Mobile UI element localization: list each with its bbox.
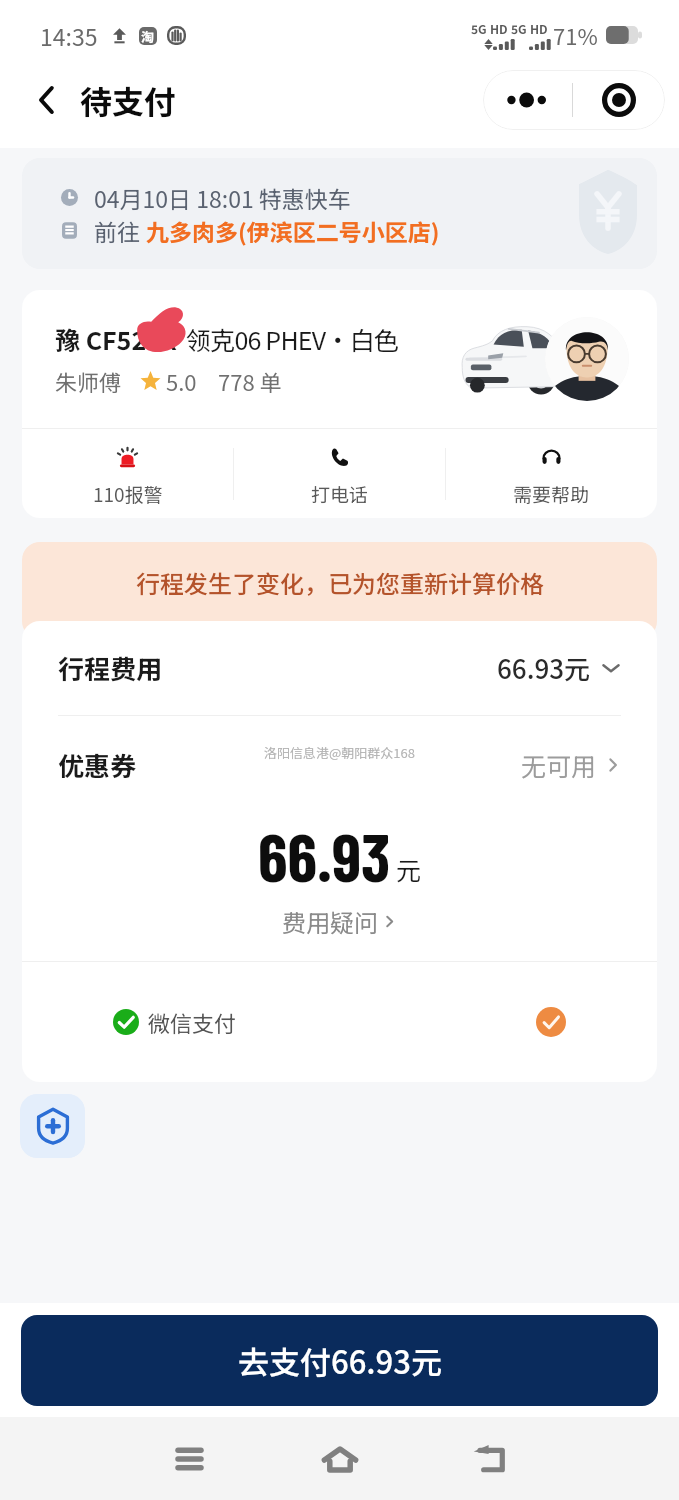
staticText: 微信支付: [148, 1006, 237, 1038]
staticText: 04月10日 18:01 特惠快车: [94, 181, 351, 214]
staticText: 淘: [141, 27, 155, 45]
staticText: 领克06 PHEV·白色: [186, 321, 398, 357]
staticText: 豫 CF521X: [55, 321, 177, 357]
staticText: 需要帮助: [513, 480, 590, 508]
staticText: 朱师傅: [55, 365, 122, 397]
button[interactable]: 行程费用: [58, 621, 621, 715]
staticText: 行程发生了变化，已为您重新计算价格: [136, 565, 544, 600]
button[interactable]: 需要帮助: [446, 429, 657, 518]
staticText: 无可用: [521, 747, 597, 783]
button[interactable]: Home: [302, 1421, 378, 1497]
button[interactable]: 微信支付: [113, 962, 566, 1082]
staticText: 费用疑问: [282, 904, 378, 939]
button[interactable]: Recording: [573, 70, 665, 130]
staticText: 66.93: [258, 815, 391, 895]
staticText: 洛阳信息港@朝阳群众168: [264, 743, 415, 762]
staticText: 元: [396, 851, 422, 887]
button[interactable]: 费用疑问: [22, 904, 657, 939]
staticText: 5G: [511, 20, 527, 37]
button[interactable]: Recents: [151, 1421, 227, 1497]
button[interactable]: 优惠券: [58, 716, 621, 813]
staticText: HD: [530, 20, 548, 37]
staticText: 71%: [553, 19, 598, 51]
staticText: 优惠券: [58, 746, 137, 784]
staticText: 打电话: [311, 480, 369, 508]
button[interactable]: Back: [452, 1421, 528, 1497]
staticText: 5.0: [166, 365, 197, 397]
button[interactable]: 04月10日 18:01 特惠快车: [22, 158, 657, 269]
button[interactable]: 110报警: [22, 429, 233, 518]
button[interactable]: Back: [26, 79, 68, 121]
button[interactable]: 打电话: [234, 429, 445, 518]
staticText: 778 单: [218, 365, 282, 397]
button[interactable]: More options: [483, 70, 572, 130]
button[interactable]: 去支付66.93元: [21, 1315, 658, 1406]
staticText: 14:35: [40, 19, 98, 52]
staticText: 九多肉多(伊滨区二号小区店): [146, 214, 440, 247]
staticText: 前往: [94, 214, 146, 247]
staticText: 66.93元: [497, 649, 591, 687]
staticText: 5G: [471, 20, 487, 37]
button[interactable]: Safety assistant: [20, 1094, 85, 1158]
staticText: 待支付: [80, 77, 177, 123]
staticText: 去支付66.93元: [238, 1338, 442, 1383]
staticText: 110报警: [93, 480, 163, 508]
staticText: 行程费用: [58, 649, 163, 687]
staticText: HD: [490, 20, 508, 37]
